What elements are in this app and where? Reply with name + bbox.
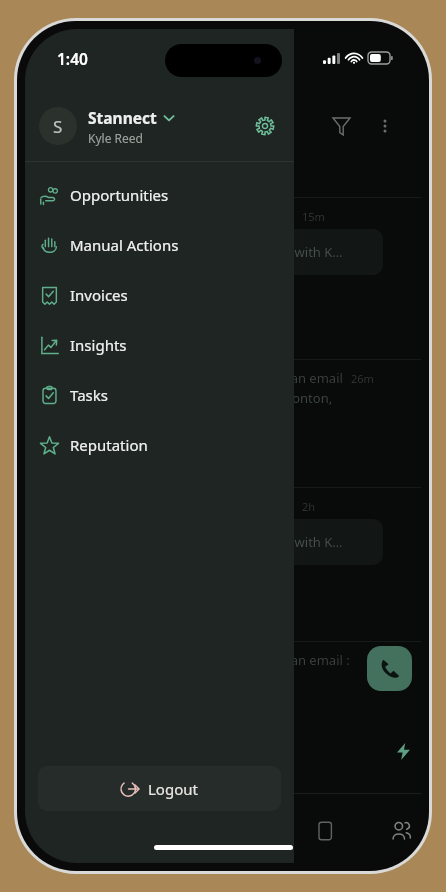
button[interactable]: Call [367,646,412,691]
button[interactable]: Tasks [25,370,294,420]
button[interactable]: Insights [25,320,294,370]
button[interactable]: Manual Actions [25,220,294,270]
staticText: sent an email : [261,651,350,669]
button[interactable]: Invoices [25,270,294,320]
button[interactable]: Reputation [25,420,294,470]
staticText: Insights [70,335,127,355]
staticText: 1:40 [57,48,88,69]
staticText: Eatonton, [273,389,333,407]
staticText: Call with K… [269,243,343,261]
button[interactable]: Logout [38,766,281,811]
staticText: 2h [302,499,316,514]
staticText: Call with K… [269,533,343,551]
button[interactable]: Tasks tab [301,807,349,855]
staticText: 15m [302,209,325,224]
staticText: Logout [148,779,198,799]
staticText: sent an email [261,369,343,387]
button[interactable]: Contacts tab [377,807,421,855]
staticText: Kyle Reed [88,130,143,146]
button[interactable]: Settings [248,109,282,143]
button[interactable]: S [25,97,294,155]
staticText: S [53,115,63,138]
button[interactable]: More options [368,109,402,143]
staticText: Tasks [70,385,108,405]
staticText: Stannect [88,107,157,128]
button[interactable]: Opportunities [25,170,294,220]
staticText: Invoices [70,285,128,305]
button[interactable]: Filter [324,109,358,143]
staticText: Manual Actions [70,235,179,255]
staticText: Opportunities [70,185,169,205]
staticText: 26m [351,371,374,386]
button[interactable]: Quick actions [381,729,421,773]
staticText: Reputation [70,435,148,455]
